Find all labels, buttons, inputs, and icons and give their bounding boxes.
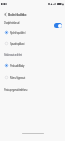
button[interactable]: Probudit Bixby bbox=[0, 61, 65, 70]
staticText: Postup vypnutí telefonu bbox=[4, 88, 28, 92]
staticText: Stisknout a držet bbox=[4, 53, 22, 57]
button[interactable]: Back bbox=[2, 11, 9, 18]
button[interactable]: Menu Vypnout bbox=[0, 73, 65, 82]
staticText: Probudit Bixby bbox=[10, 64, 25, 68]
staticText: Boční tlačítko bbox=[8, 12, 27, 16]
button[interactable]: Spustit aplikaci bbox=[0, 39, 65, 48]
staticText: Dvojité stisknutí bbox=[4, 21, 20, 25]
button[interactable]: Dvojité stisknutí bbox=[0, 18, 65, 29]
staticText: Rychlé spuštění bbox=[10, 31, 26, 35]
button[interactable]: Rychlé spuštění bbox=[0, 28, 65, 37]
button[interactable]: Postup vypnutí telefonu bbox=[0, 85, 65, 94]
staticText: Menu Vypnout bbox=[10, 76, 25, 80]
staticText: Spustit aplikaci bbox=[10, 42, 25, 46]
